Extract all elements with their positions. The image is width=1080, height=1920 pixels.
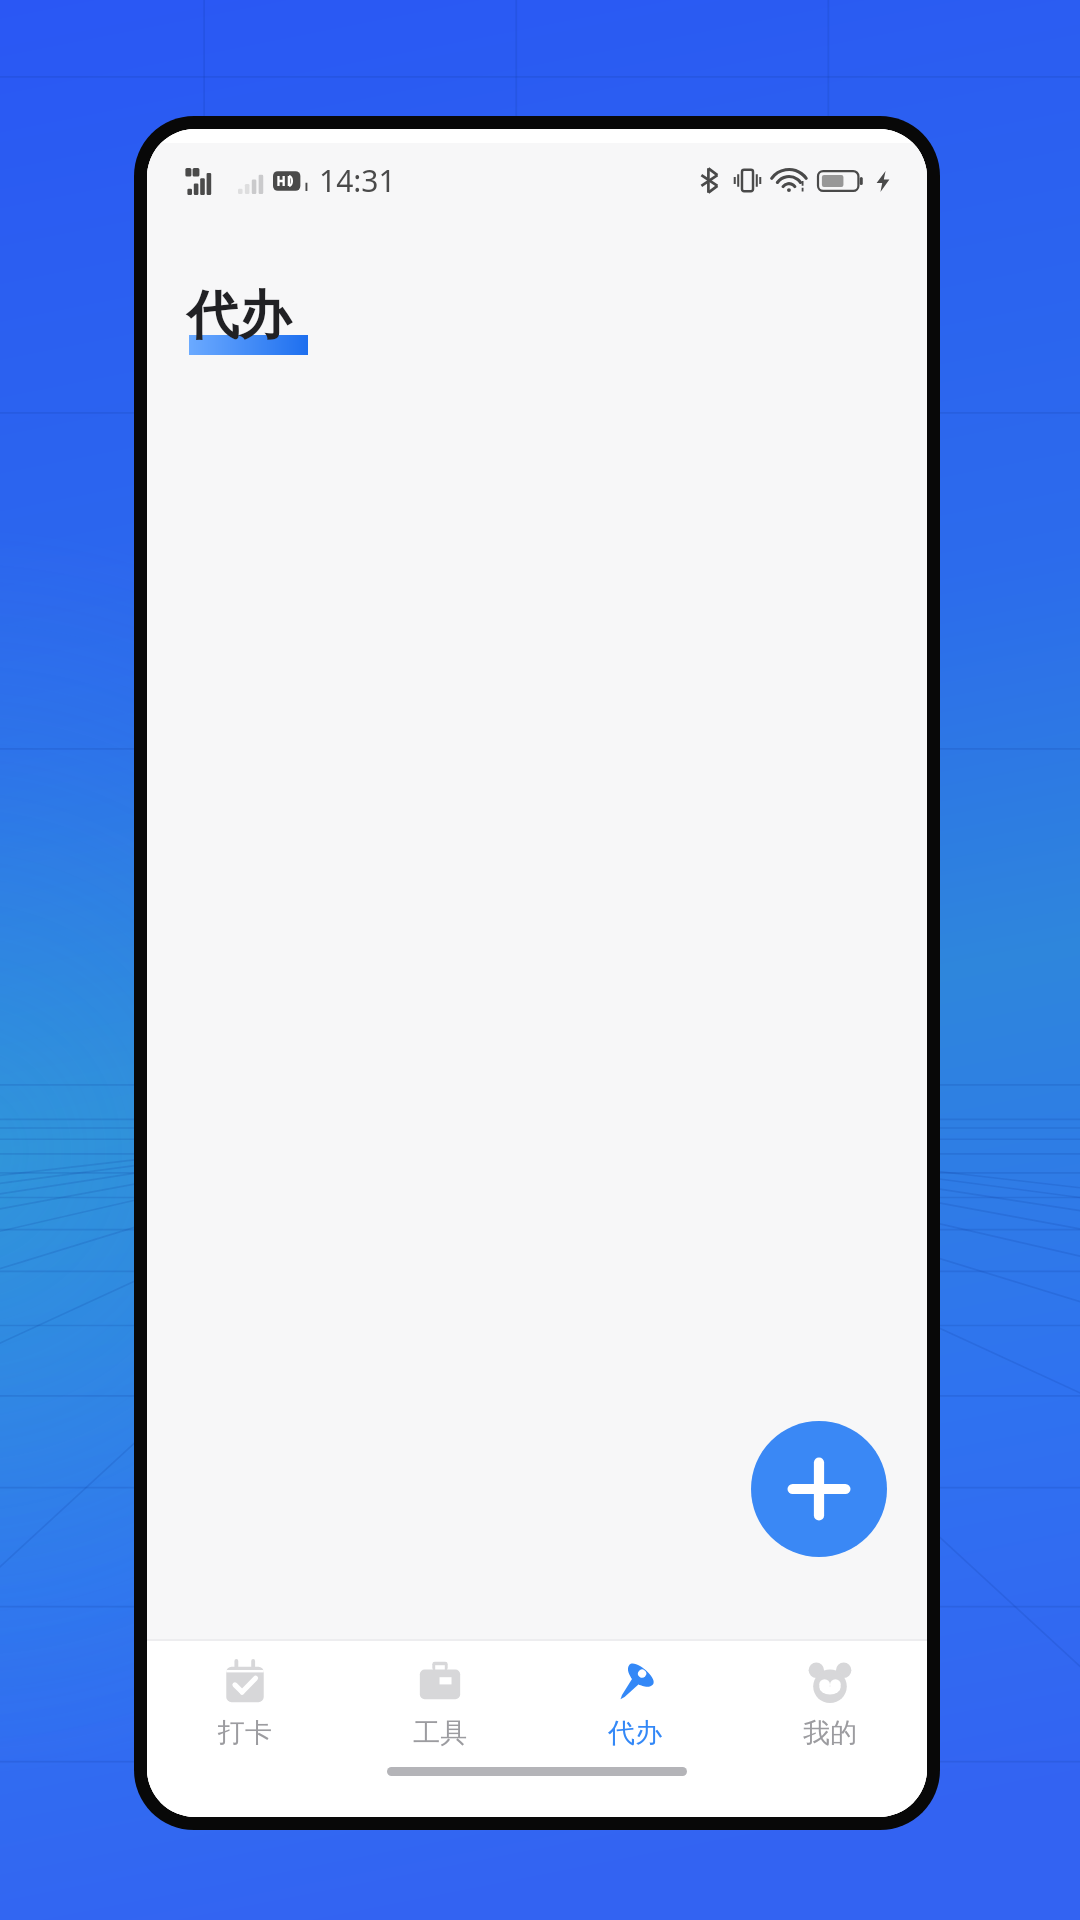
staticText: 代办 bbox=[187, 283, 291, 349]
button[interactable]: 打卡 bbox=[147, 1641, 342, 1767]
button[interactable]: 代办 bbox=[537, 1641, 732, 1767]
staticText: 工具 bbox=[413, 1716, 467, 1750]
staticText: 我的 bbox=[803, 1716, 857, 1750]
staticText: 代办 bbox=[608, 1716, 662, 1750]
staticText: 打卡 bbox=[218, 1716, 272, 1750]
staticText: 14:31 bbox=[319, 160, 396, 201]
button[interactable]: 工具 bbox=[342, 1641, 537, 1767]
button[interactable]: Add todo bbox=[751, 1421, 887, 1557]
button[interactable]: 我的 bbox=[732, 1641, 927, 1767]
